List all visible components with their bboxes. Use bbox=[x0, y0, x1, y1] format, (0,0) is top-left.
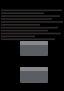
button[interactable] bbox=[20, 67, 48, 83]
button[interactable] bbox=[20, 41, 48, 56]
